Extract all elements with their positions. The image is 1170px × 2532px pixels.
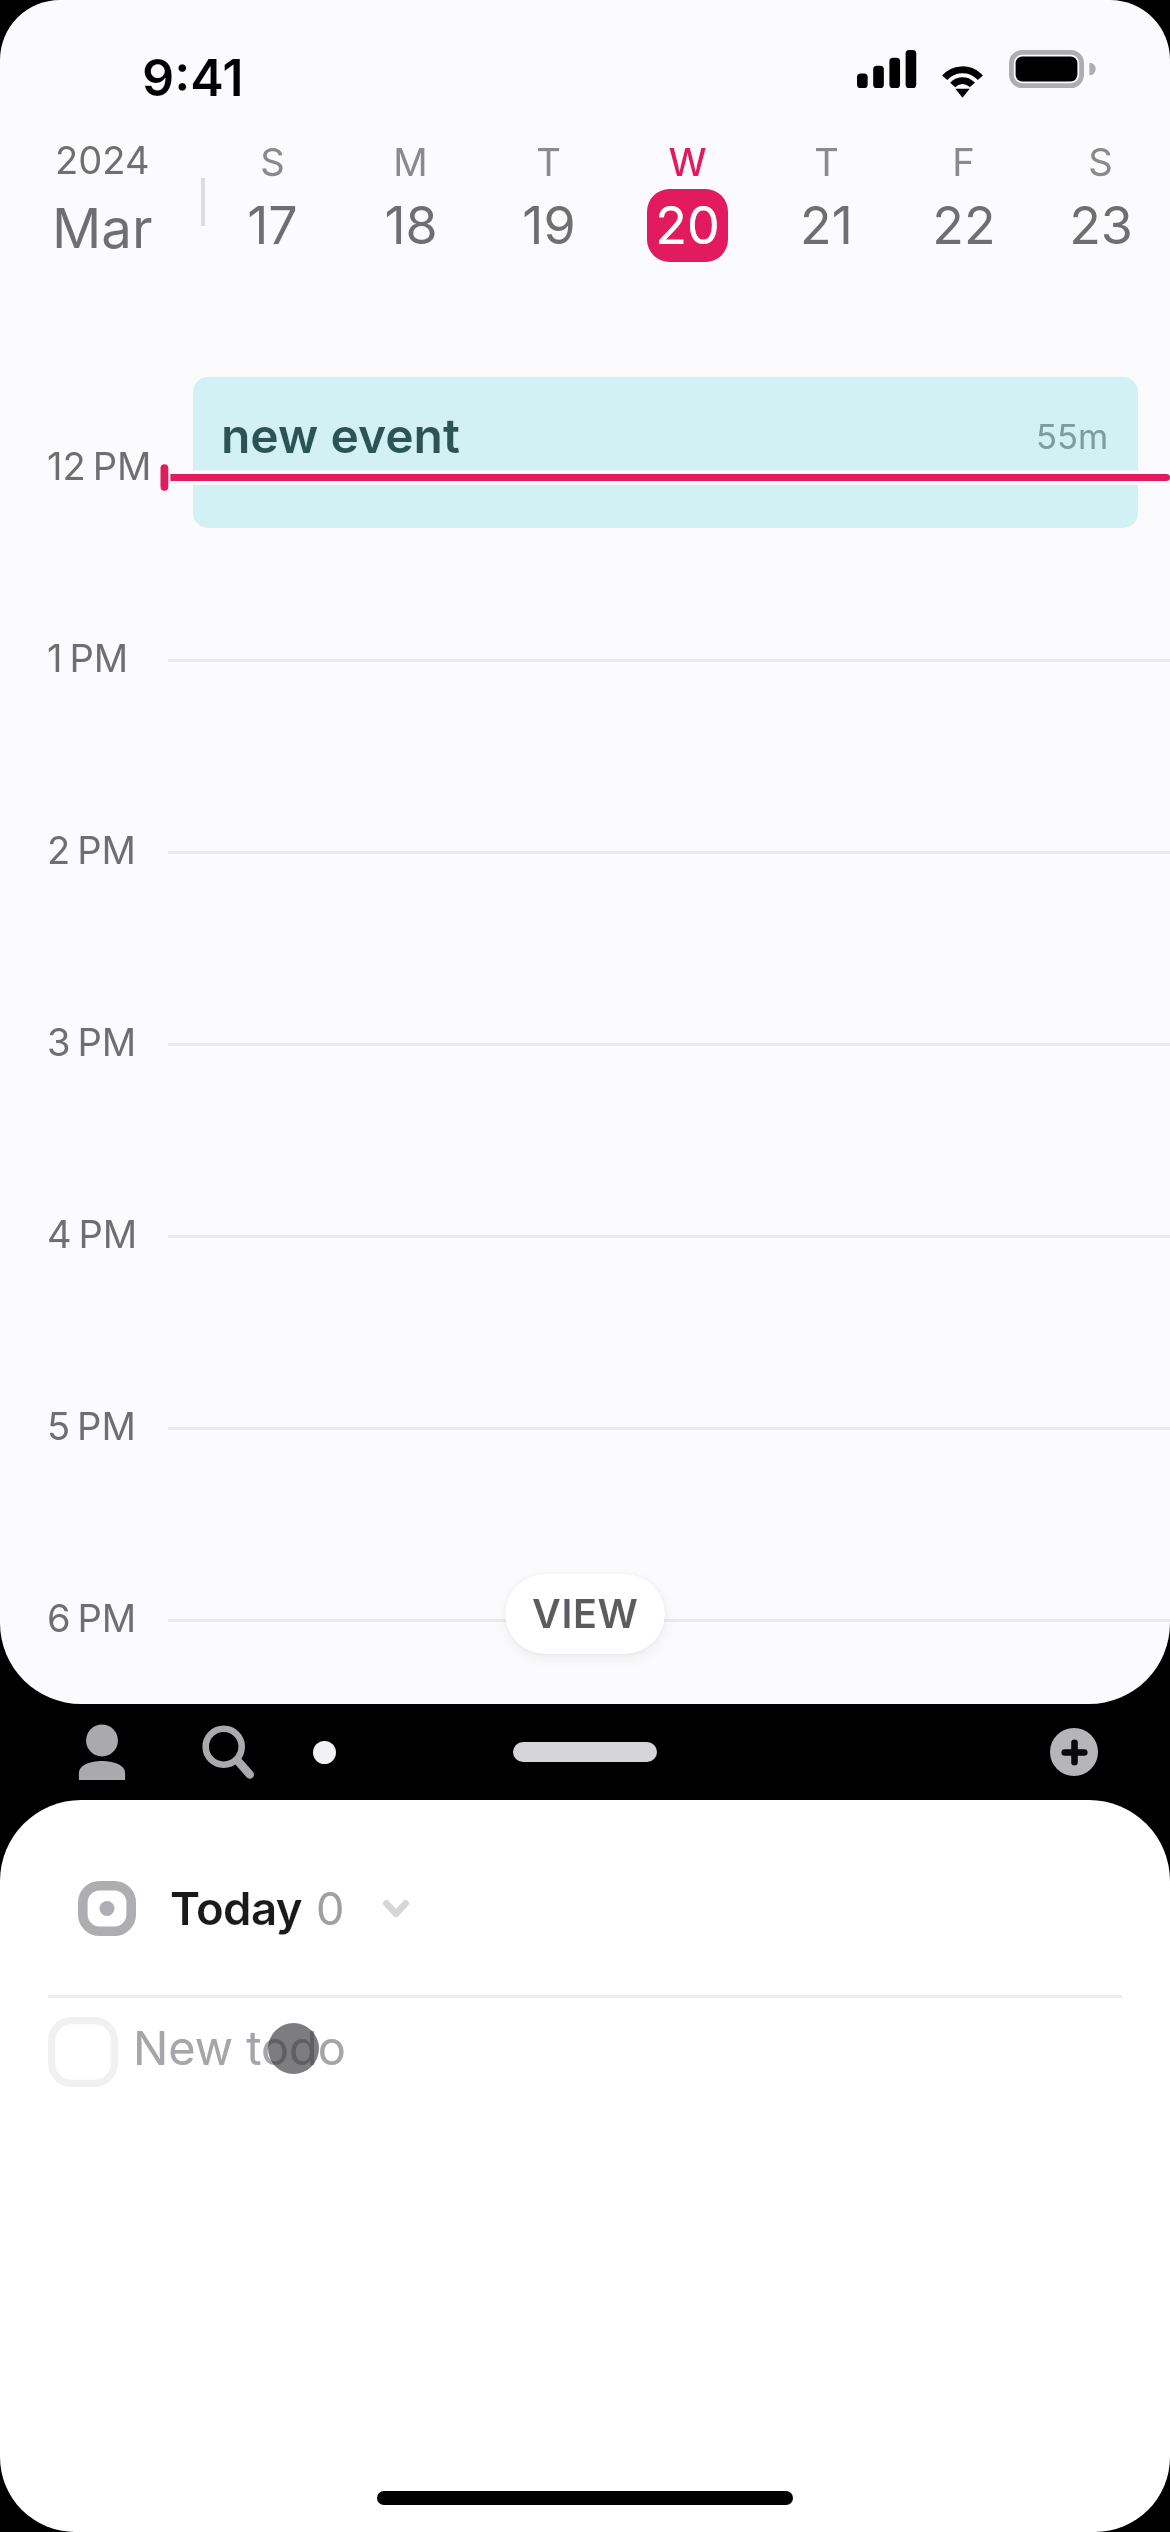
staticText: New todo [133,2020,346,2077]
button[interactable]: VIEW [505,1574,665,1654]
staticText: 23 [1069,194,1133,257]
button[interactable]: W [618,122,756,272]
button[interactable]: Today [0,1851,1170,1965]
button[interactable]: Home [313,1741,336,1764]
button[interactable]: New todo [0,1989,1170,2115]
staticText: S [1088,139,1113,185]
button[interactable]: Add [1050,1728,1098,1776]
staticText: 5 PM [47,1403,136,1449]
staticText: 1 PM [47,635,129,681]
staticText: 17 [247,194,298,257]
button[interactable]: S [203,122,341,272]
button[interactable]: new event [193,377,1138,528]
staticText: W [668,139,707,185]
staticText: 3 PM [47,1019,137,1065]
staticText: new event [221,406,460,464]
button[interactable]: Search [189,1713,267,1791]
staticText: 55m [1036,416,1109,458]
staticText: 12 PM [47,443,152,489]
staticText: T [814,139,839,185]
button[interactable]: F [894,122,1032,272]
button[interactable]: T [757,122,895,272]
staticText: 4 PM [47,1211,138,1257]
button[interactable]: M [341,122,479,272]
staticText: 0 [316,1881,345,1935]
staticText: T [536,139,561,185]
staticText: 2024 [55,137,150,183]
staticText: Today [170,1881,302,1936]
staticText: 21 [800,194,853,257]
staticText: 9:41 [142,47,244,108]
staticText: 20 [655,194,720,257]
button[interactable]: T [479,122,617,272]
staticText: M [393,139,428,185]
staticText: Mar [52,195,153,261]
staticText: 22 [932,194,996,257]
staticText: VIEW [532,1590,639,1638]
staticText: 6 PM [47,1595,137,1641]
staticText: F [952,139,975,185]
staticText: 2 PM [47,827,136,873]
button[interactable]: Profile [63,1713,141,1791]
button[interactable]: S [1031,122,1169,272]
staticText: 19 [522,194,576,257]
staticText: 18 [384,194,438,257]
staticText: S [260,139,285,185]
